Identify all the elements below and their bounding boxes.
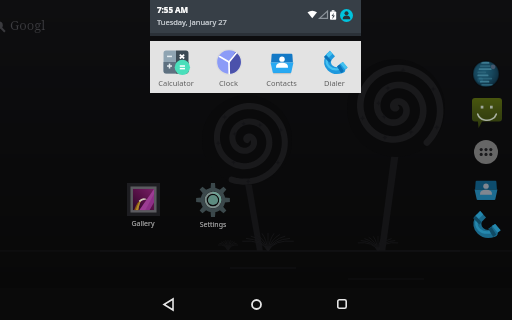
staticText: Settings: [190, 220, 236, 230]
button[interactable]: Contacts: [473, 176, 499, 202]
staticText: Dialer: [308, 78, 361, 88]
button[interactable]: Calculator: [150, 41, 202, 93]
staticText: Calculator: [150, 78, 202, 88]
button[interactable]: Google search: [0, 14, 120, 36]
staticText: Contacts: [255, 78, 308, 88]
button[interactable]: Contacts: [255, 41, 308, 93]
staticText: Clock: [202, 78, 255, 88]
staticText: Tuesday, January 27: [157, 17, 227, 27]
button[interactable]: Browser: [473, 61, 499, 87]
button[interactable]: All apps: [474, 140, 498, 164]
button[interactable]: Settings: [190, 183, 236, 230]
button[interactable]: Gallery: [120, 183, 166, 229]
button[interactable]: Clock: [202, 41, 255, 93]
staticText: 7:55 AM: [157, 4, 189, 15]
button[interactable]: User profile: [340, 9, 353, 22]
button[interactable]: Home: [237, 288, 275, 320]
staticText: Googl: [10, 16, 46, 34]
button[interactable]: Dialer: [471, 209, 501, 239]
button[interactable]: Back: [150, 288, 188, 320]
button[interactable]: Messaging: [472, 98, 502, 128]
button[interactable]: Dialer: [308, 41, 361, 93]
staticText: Gallery: [120, 219, 166, 229]
button[interactable]: Recents: [323, 288, 361, 320]
